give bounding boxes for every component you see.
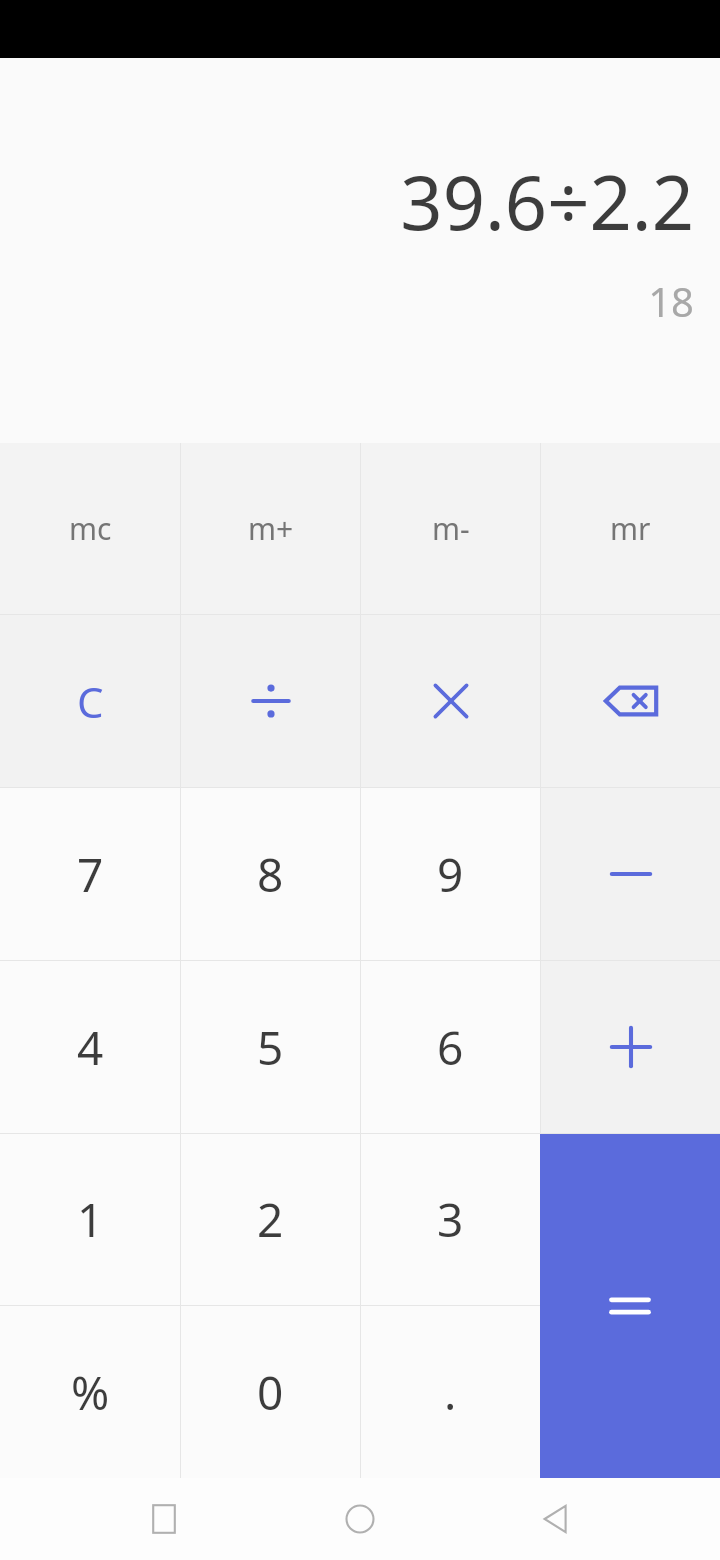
staticText: m-	[432, 508, 470, 549]
button[interactable]: Multiply	[361, 615, 540, 787]
staticText: 9	[437, 843, 464, 906]
button[interactable]: Recents	[132, 1487, 196, 1551]
staticText: 1	[77, 1188, 104, 1251]
button[interactable]: Minus	[541, 788, 720, 960]
button[interactable]: .	[361, 1306, 540, 1478]
button[interactable]: mc	[0, 443, 180, 614]
button[interactable]: Backspace	[541, 615, 720, 787]
staticText: 6	[437, 1016, 464, 1079]
staticText: %	[71, 1361, 110, 1424]
staticText: 39.6÷2.2	[400, 151, 694, 252]
button[interactable]: mr	[541, 443, 720, 614]
button[interactable]: 5	[181, 961, 360, 1133]
staticText: 8	[257, 843, 284, 906]
staticText: .	[444, 1361, 457, 1424]
staticText: m+	[248, 508, 294, 549]
button[interactable]: 0	[181, 1306, 360, 1478]
staticText: mc	[69, 508, 112, 549]
staticText: 5	[257, 1016, 284, 1079]
button[interactable]: C	[0, 615, 180, 787]
button[interactable]: 7	[0, 788, 180, 960]
staticText: 3	[437, 1188, 464, 1251]
button[interactable]: m-	[361, 443, 540, 614]
button[interactable]: 1	[0, 1134, 180, 1305]
button[interactable]: 3	[361, 1134, 540, 1305]
button[interactable]: Plus	[541, 961, 720, 1133]
staticText: 4	[77, 1016, 104, 1079]
button[interactable]: 8	[181, 788, 360, 960]
button[interactable]: m+	[181, 443, 360, 614]
button[interactable]: 9	[361, 788, 540, 960]
staticText: 18	[648, 274, 694, 328]
staticText: 0	[257, 1361, 284, 1424]
staticText: 7	[77, 843, 104, 906]
staticText: 2	[257, 1188, 284, 1251]
button[interactable]: %	[0, 1306, 180, 1478]
button[interactable]: Home	[328, 1487, 392, 1551]
button[interactable]: Back	[524, 1487, 588, 1551]
button[interactable]: 4	[0, 961, 180, 1133]
staticText: mr	[610, 508, 651, 549]
button[interactable]: 2	[181, 1134, 360, 1305]
button[interactable]: 6	[361, 961, 540, 1133]
button[interactable]: Divide	[181, 615, 360, 787]
button[interactable]: Equals	[540, 1134, 720, 1478]
staticText: C	[77, 673, 104, 730]
